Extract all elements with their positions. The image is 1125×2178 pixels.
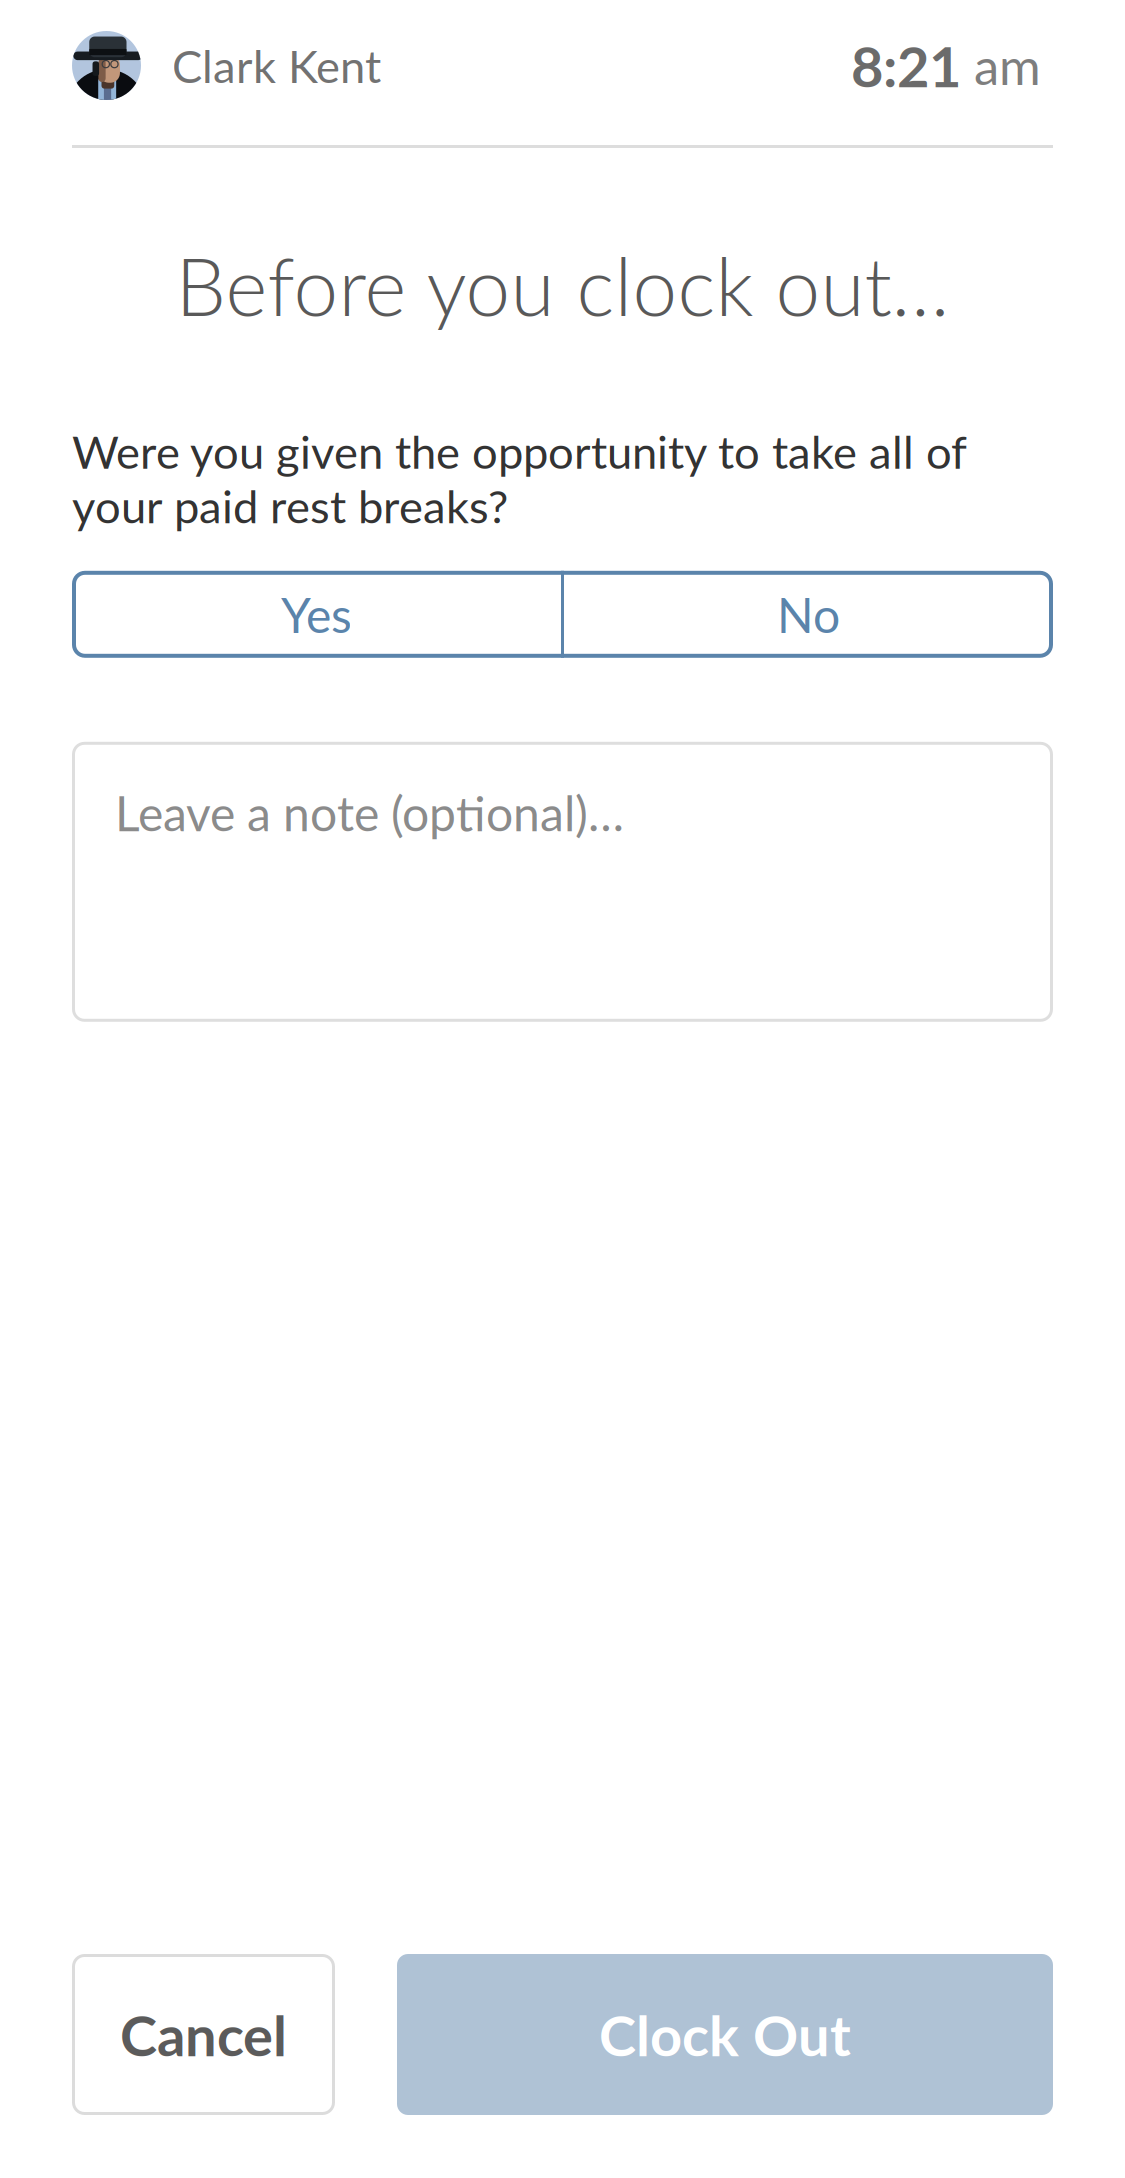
button[interactable]: Cancel: [72, 1954, 335, 2115]
button[interactable]: No: [564, 571, 1053, 658]
staticText: Cancel: [120, 2001, 287, 2068]
button[interactable]: Clock Out: [397, 1954, 1053, 2115]
staticText: Were you given the opportunity to take a…: [72, 424, 967, 533]
button[interactable]: Leave a note (optional)…: [72, 742, 1053, 1022]
staticText: Clock Out: [599, 2001, 851, 2068]
staticText: am: [974, 35, 1041, 96]
staticText: No: [777, 585, 840, 643]
staticText: Clark Kent: [172, 38, 381, 93]
staticText: Leave a note (optional)…: [115, 784, 624, 841]
staticText: 8:21: [851, 32, 961, 99]
staticText: Yes: [281, 585, 352, 643]
button[interactable]: Yes: [72, 571, 561, 658]
staticText: Before you clock out…: [175, 237, 949, 333]
